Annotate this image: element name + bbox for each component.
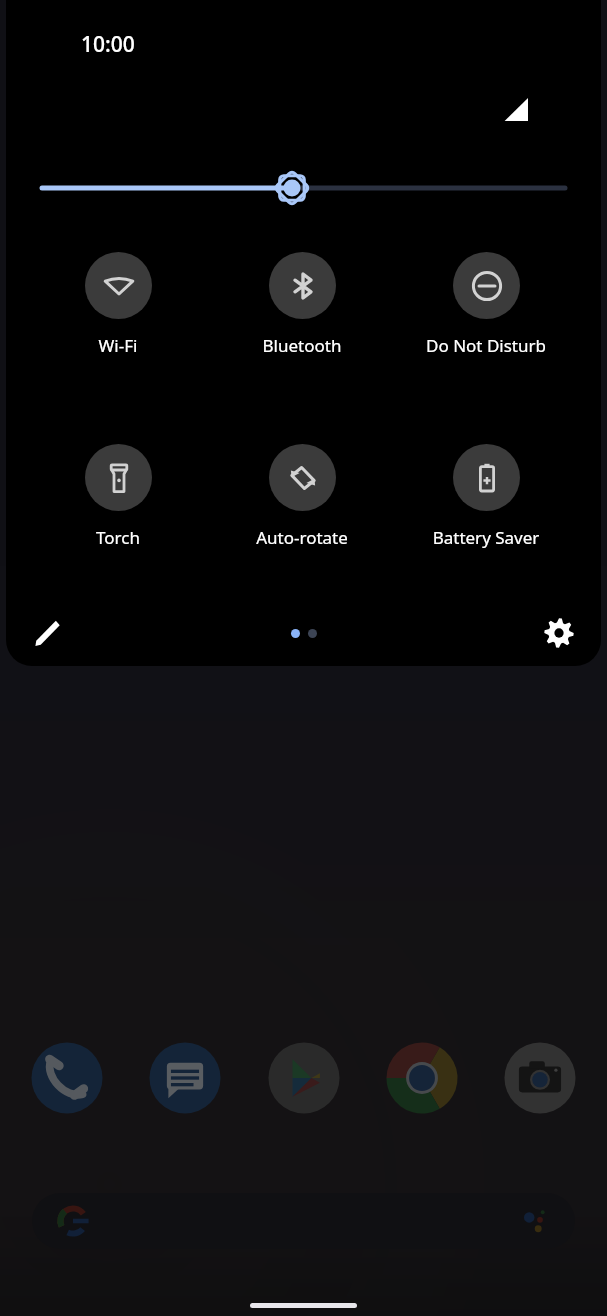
button[interactable]: Google search	[32, 1193, 575, 1249]
button[interactable]: Bluetooth	[218, 252, 386, 357]
button[interactable]: Edit tiles	[20, 605, 76, 661]
button[interactable]: Chrome	[385, 1041, 459, 1115]
button[interactable]: Torch	[34, 444, 202, 549]
button[interactable]: Auto-rotate	[218, 444, 386, 549]
staticText: 10:00	[81, 30, 135, 59]
staticText: Torch	[34, 526, 202, 549]
button[interactable]: Messages	[148, 1041, 222, 1115]
button[interactable]: Battery Saver	[402, 444, 570, 549]
button[interactable]: Settings	[531, 605, 587, 661]
button[interactable]: Play Store	[267, 1041, 341, 1115]
staticText: Bluetooth	[218, 334, 386, 357]
staticText: Battery Saver	[402, 526, 570, 549]
button[interactable]: Do Not Disturb	[402, 252, 570, 357]
staticText: Auto-rotate	[218, 526, 386, 549]
staticText: Do Not Disturb	[402, 334, 570, 357]
button[interactable]: Camera	[503, 1041, 577, 1115]
staticText: Wi-Fi	[34, 334, 202, 357]
button[interactable]: Wi-Fi	[34, 252, 202, 357]
button[interactable]: Brightness	[36, 166, 571, 210]
button[interactable]: Phone	[30, 1041, 104, 1115]
